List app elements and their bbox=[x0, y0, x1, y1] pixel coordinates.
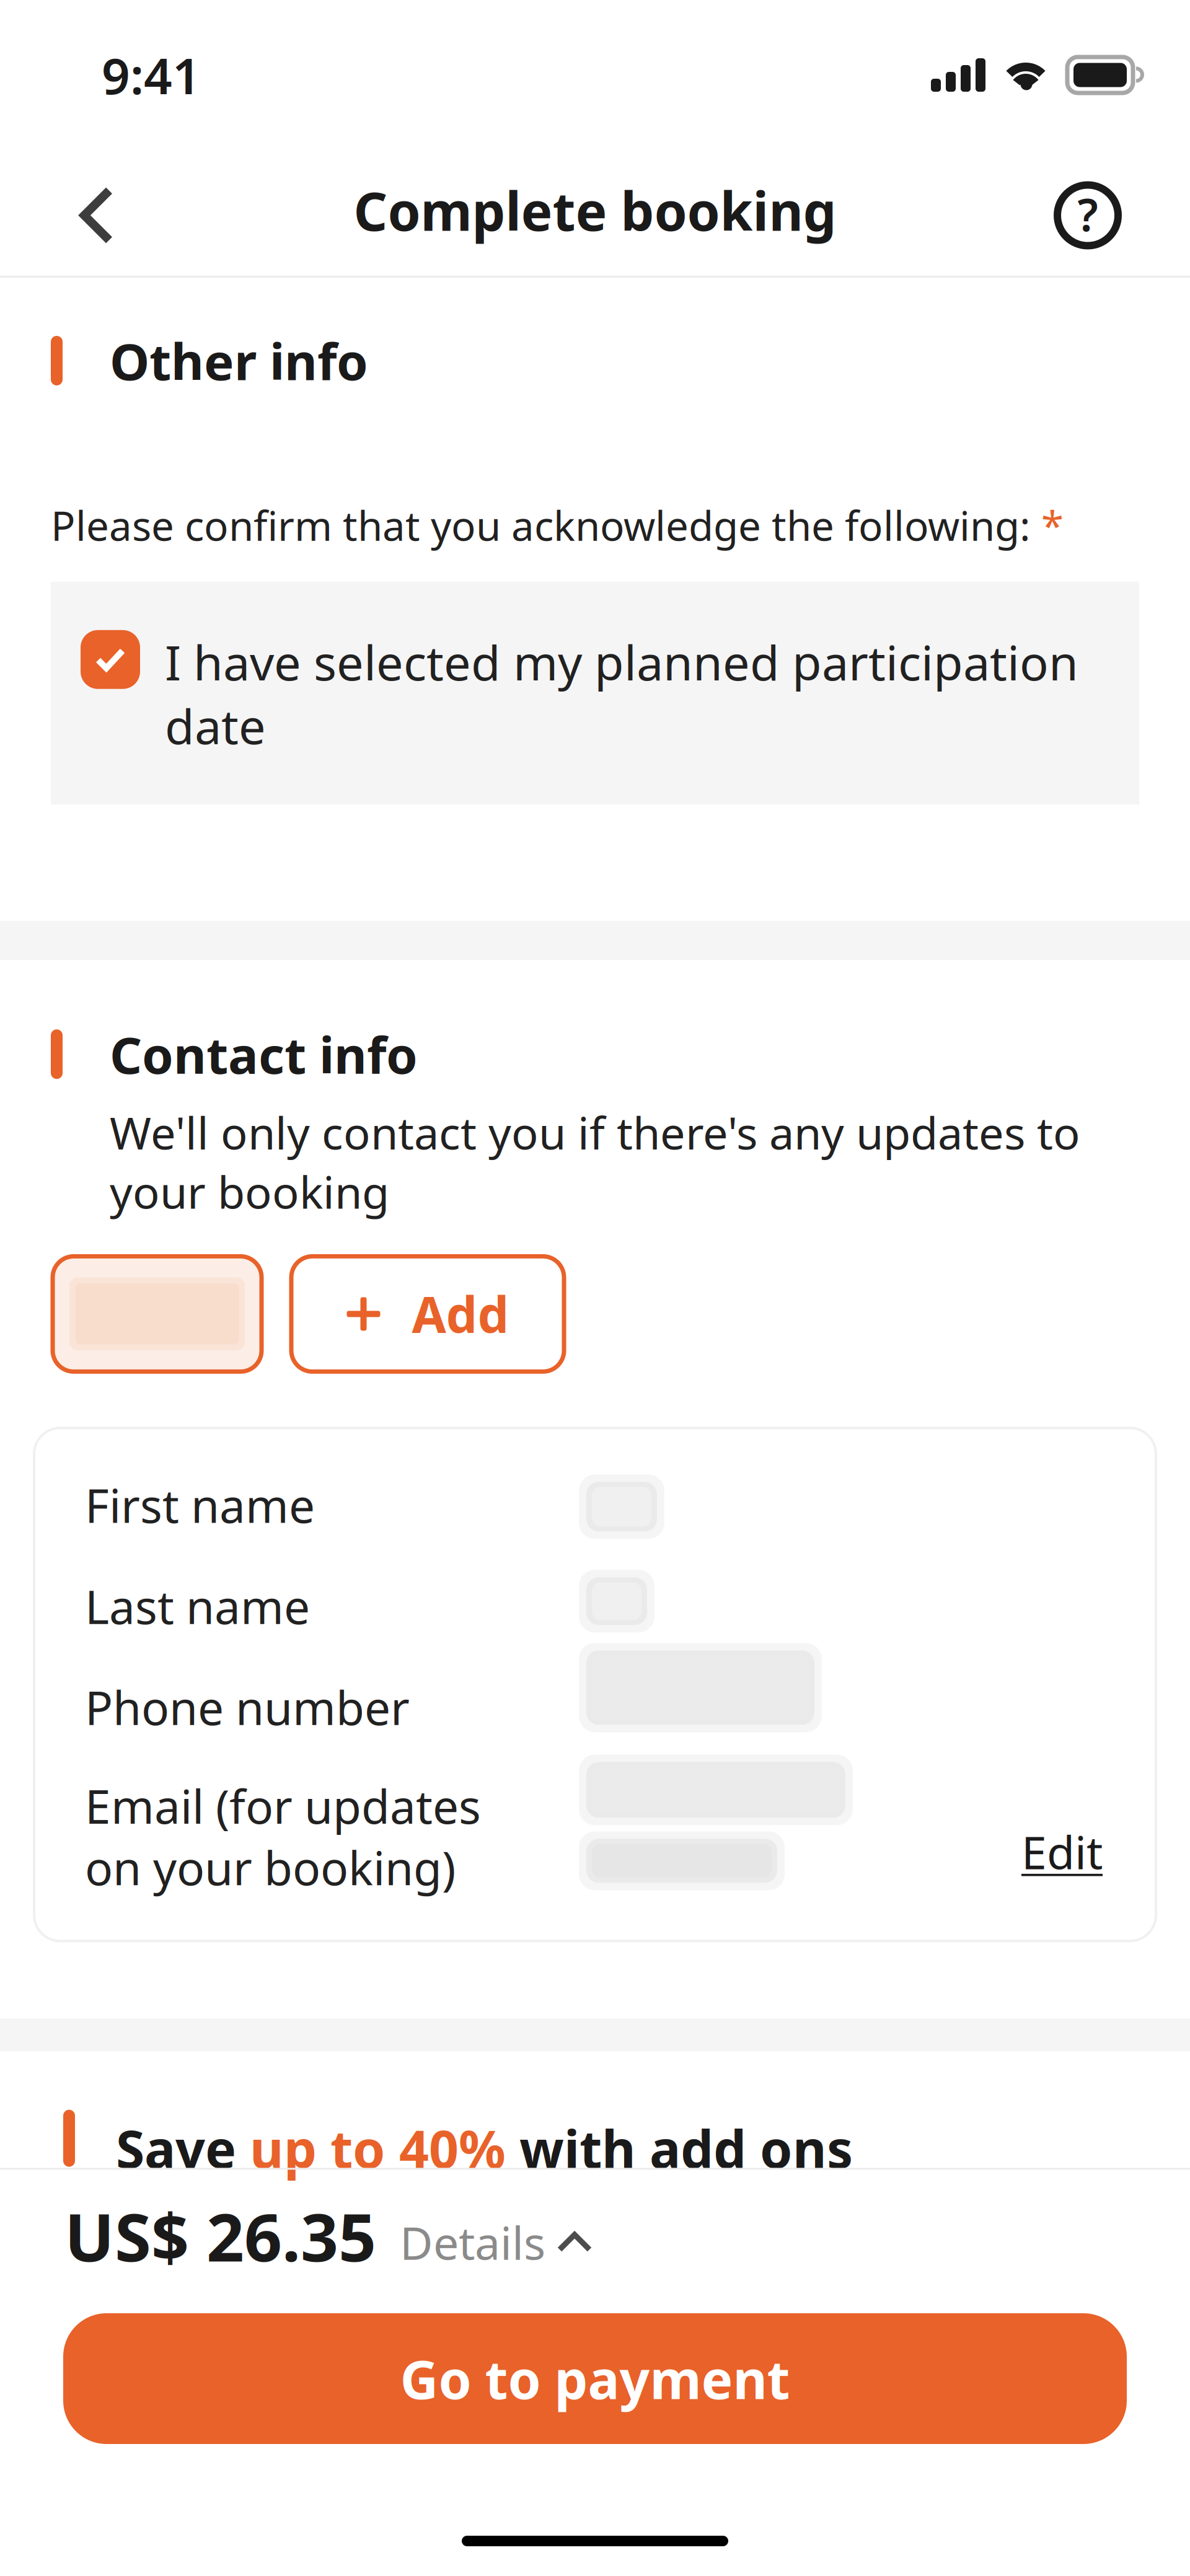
staticText: Add bbox=[412, 1281, 509, 1347]
staticText: First name bbox=[85, 1474, 315, 1536]
button[interactable]: Back bbox=[47, 155, 146, 276]
button[interactable]: Edit bbox=[1011, 1817, 1113, 1887]
staticText: Complete booking bbox=[354, 175, 836, 245]
staticText: ? bbox=[1078, 184, 1098, 244]
staticText: up to 40% bbox=[250, 2113, 506, 2183]
button[interactable]: Add bbox=[291, 1256, 564, 1372]
staticText: I have selected my planned participation… bbox=[165, 630, 1078, 757]
staticText: with add ons bbox=[506, 2113, 853, 2183]
staticText: Other info bbox=[110, 327, 368, 394]
staticText: Email (for updates on your booking) bbox=[85, 1775, 481, 1898]
staticText: * bbox=[1031, 498, 1064, 552]
staticText: Last name bbox=[85, 1575, 310, 1637]
staticText: Please confirm that you acknowledge the … bbox=[51, 498, 1031, 552]
button[interactable]: Go to payment bbox=[63, 2313, 1127, 2444]
staticText: Details bbox=[400, 2212, 545, 2272]
button[interactable]: Details bbox=[376, 2200, 593, 2272]
button[interactable]: Help bbox=[1038, 155, 1137, 276]
staticText: Save bbox=[116, 2113, 250, 2183]
staticText: US$ 26.35 bbox=[64, 2192, 376, 2280]
staticText: Go to payment bbox=[400, 2343, 790, 2414]
staticText: Edit bbox=[1021, 1821, 1103, 1882]
button[interactable]: I have selected my planned participation… bbox=[81, 630, 140, 689]
staticText: Contact info bbox=[110, 1021, 418, 1088]
staticText: Phone number bbox=[85, 1676, 410, 1738]
button[interactable]: Traveller 1 bbox=[53, 1256, 262, 1372]
staticText: We'll only contact you if there's any up… bbox=[110, 1103, 1080, 1221]
staticText: 9:41 bbox=[102, 42, 201, 108]
